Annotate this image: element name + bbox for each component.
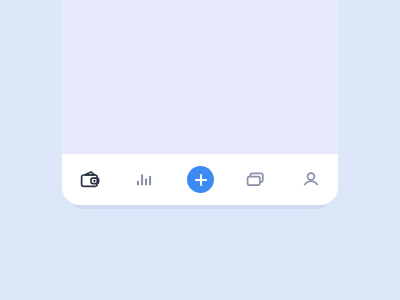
button[interactable]: Wallet [62,154,117,205]
button[interactable]: Cards [228,154,283,205]
button[interactable]: Profile [283,154,338,205]
button[interactable]: Statistics [117,154,172,205]
button[interactable]: Add [173,154,228,205]
